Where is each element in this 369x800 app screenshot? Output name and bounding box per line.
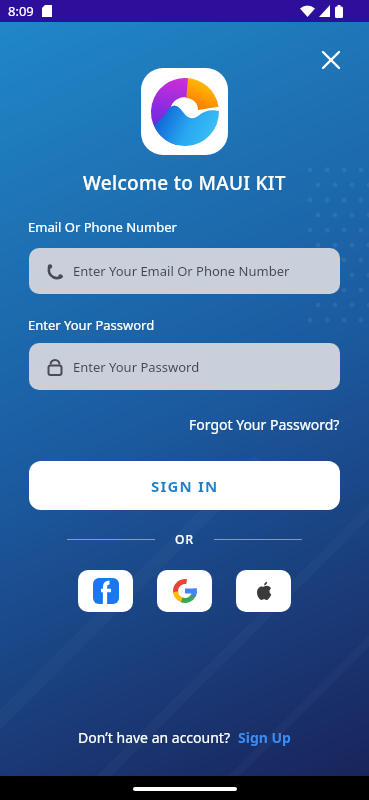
staticText: Enter Your Email Or Phone Number <box>73 262 290 280</box>
button[interactable] <box>315 44 347 76</box>
staticText: Enter Your Password <box>73 358 200 376</box>
button[interactable]: Sign Up <box>238 728 291 747</box>
button[interactable] <box>78 570 133 612</box>
button[interactable]: SIGN IN <box>29 461 340 510</box>
staticText: 8:09 <box>8 2 34 20</box>
button[interactable]: Forgot Your Password? <box>189 415 340 434</box>
button[interactable]: Enter Your Password <box>29 343 340 390</box>
staticText: Welcome to MAUI KIT <box>83 170 286 196</box>
staticText: Donʼt have an account? <box>78 728 230 747</box>
staticText: OR <box>175 531 194 547</box>
button[interactable] <box>157 570 212 612</box>
button[interactable] <box>236 570 291 612</box>
staticText: SIGN IN <box>151 476 219 496</box>
staticText: Enter Your Password <box>28 316 155 334</box>
staticText: Email Or Phone Number <box>28 218 177 236</box>
button[interactable]: Enter Your Email Or Phone Number <box>29 248 340 294</box>
